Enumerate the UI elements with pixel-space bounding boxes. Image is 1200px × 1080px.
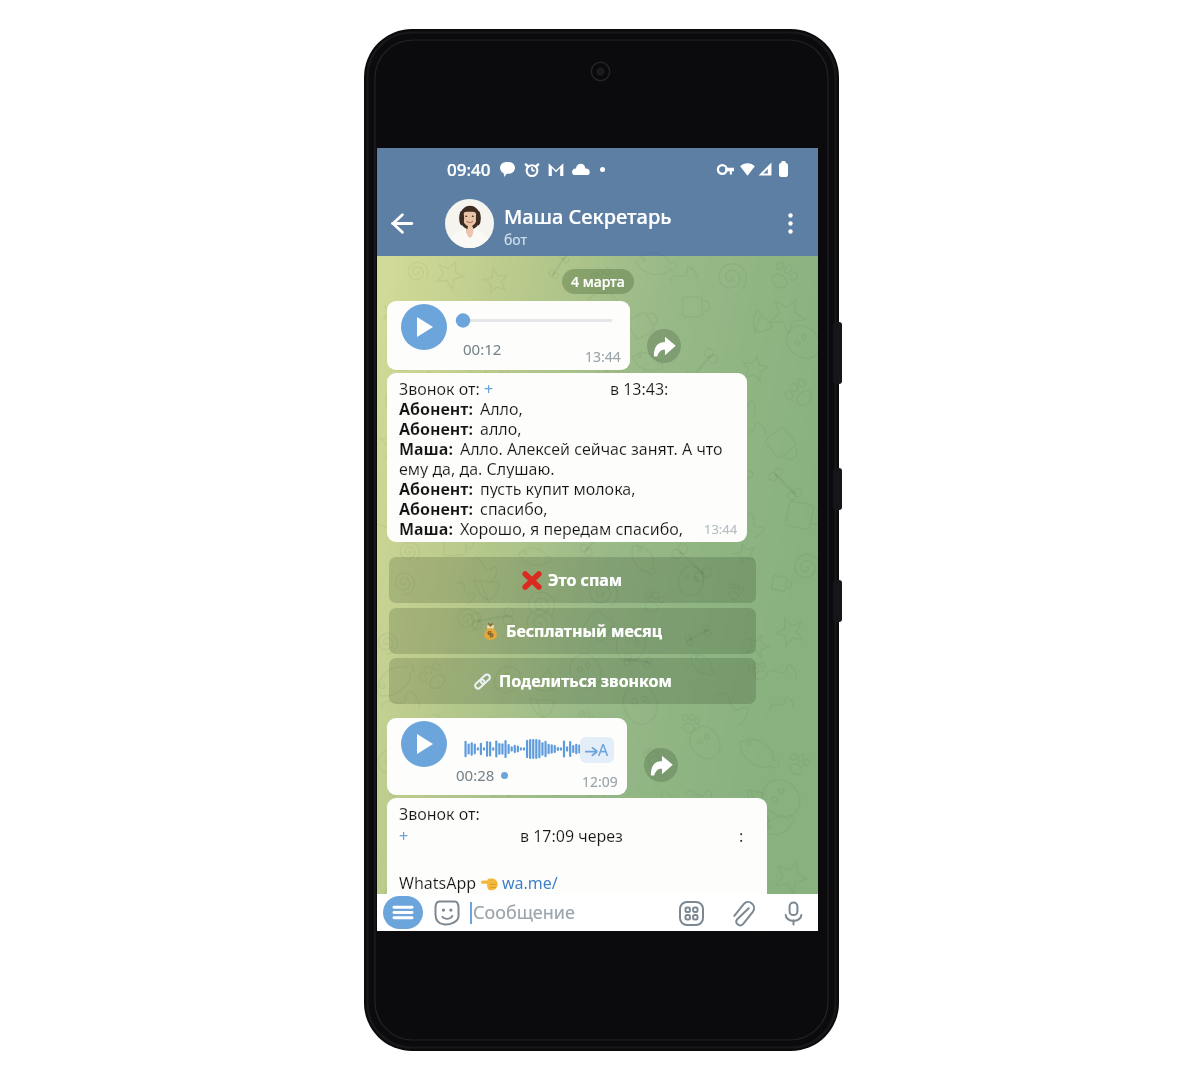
button[interactable]: Transcribe bbox=[580, 737, 614, 763]
button[interactable]: Play bbox=[401, 304, 447, 350]
button[interactable]: Play bbox=[387, 301, 630, 370]
staticText: алло, bbox=[480, 418, 522, 438]
staticText: wa.me/ bbox=[502, 872, 558, 894]
button[interactable]: Поделиться звонком bbox=[389, 658, 756, 704]
button[interactable]: Bot commands bbox=[676, 898, 706, 928]
staticText: 13:44 bbox=[704, 520, 738, 538]
staticText: Поделиться звонком bbox=[499, 670, 672, 692]
staticText: WhatsApp bbox=[399, 872, 481, 894]
staticText: Tel bbox=[399, 894, 420, 916]
staticText: Бесплатный месяц bbox=[506, 620, 663, 642]
staticText: 4 марта bbox=[571, 272, 625, 291]
staticText: Абонент: bbox=[399, 398, 473, 418]
staticText: Маша: bbox=[399, 518, 453, 539]
staticText: t.me/ bbox=[503, 894, 544, 916]
staticText: 00:12 bbox=[463, 339, 502, 359]
staticText: бот bbox=[504, 230, 528, 249]
staticText: Звонок от: bbox=[399, 378, 484, 398]
button[interactable]: Звонок от: bbox=[387, 798, 767, 931]
button[interactable]: Play bbox=[387, 718, 627, 795]
button[interactable]: Play bbox=[401, 721, 447, 767]
staticText: Алло, bbox=[480, 398, 523, 418]
staticText: пусть купит молока, bbox=[480, 478, 636, 498]
button[interactable]: Emoji bbox=[434, 900, 460, 926]
staticText: в 13:43: bbox=[610, 378, 669, 398]
button[interactable]: More options bbox=[767, 200, 813, 246]
staticText: Маша: bbox=[399, 438, 453, 458]
button[interactable]: Бесплатный месяц bbox=[389, 608, 756, 654]
button[interactable]: Звонок от: bbox=[387, 373, 747, 542]
button[interactable]: Attach file bbox=[727, 898, 757, 928]
staticText: Это спам bbox=[548, 569, 623, 591]
staticText: спасибо, bbox=[480, 498, 548, 518]
button[interactable]: Record voice message bbox=[778, 898, 808, 928]
staticText: Хорошо, я передам спасибо, bbox=[460, 518, 684, 539]
staticText: в 17:09 через bbox=[520, 825, 623, 847]
button[interactable]: Bot menu bbox=[383, 896, 423, 929]
staticText: 12:09 bbox=[582, 772, 618, 791]
staticText: Алло. Алексей сейчас занят. А что bbox=[460, 438, 723, 458]
staticText: Абонент: bbox=[399, 478, 473, 498]
button[interactable]: Forward bbox=[644, 748, 678, 782]
staticText: 13:44 bbox=[585, 347, 621, 366]
staticText: Сообщение bbox=[473, 900, 575, 925]
staticText: Маша Секретарь bbox=[504, 203, 672, 230]
staticText: + bbox=[484, 378, 494, 398]
button[interactable]: Back bbox=[377, 194, 427, 252]
staticText: Абонент: bbox=[399, 418, 473, 438]
staticText: : bbox=[739, 825, 744, 847]
staticText: ему да, да. Слушаю. bbox=[399, 458, 555, 478]
button[interactable]: Маша Секретарь bbox=[445, 190, 767, 256]
staticText: 00:28 bbox=[456, 765, 495, 785]
button[interactable]: Это спам bbox=[389, 557, 756, 603]
staticText: A bbox=[598, 739, 609, 761]
staticText: Абонент: bbox=[399, 498, 473, 518]
button[interactable]: Forward bbox=[647, 329, 681, 363]
staticText: Звонок от: bbox=[399, 803, 480, 825]
staticText: + bbox=[399, 825, 409, 847]
staticText: 09:40 bbox=[447, 158, 491, 181]
